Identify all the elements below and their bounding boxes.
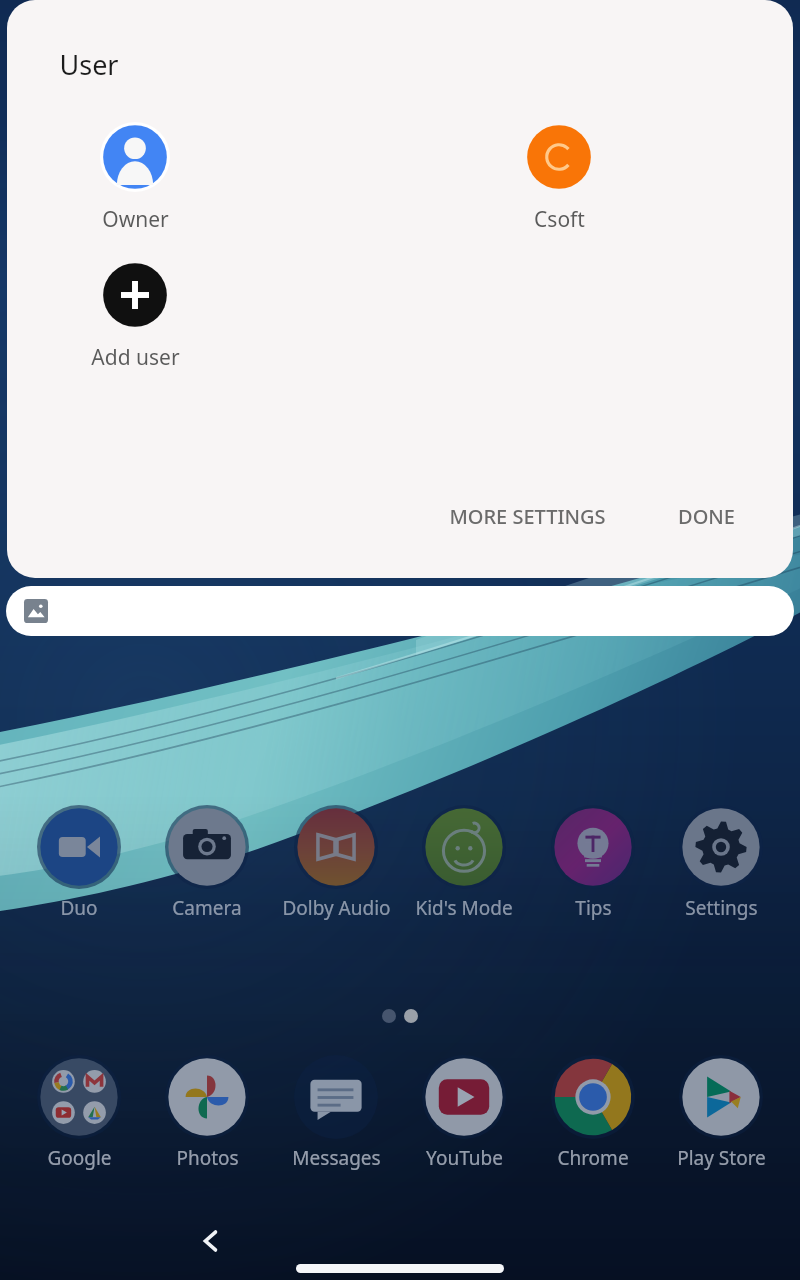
staticText: Photos: [176, 1145, 239, 1171]
button[interactable]: Back: [180, 1210, 242, 1272]
button[interactable]: Play Store: [661, 1055, 781, 1171]
staticText: DONE: [678, 503, 735, 530]
staticText: Add user: [91, 343, 180, 372]
button[interactable]: Home: [295, 1255, 505, 1280]
button[interactable]: Settings: [661, 805, 781, 921]
button[interactable]: Messages: [276, 1055, 396, 1171]
button[interactable]: YouTube: [404, 1055, 524, 1171]
staticText: Duo: [60, 895, 98, 921]
staticText: Camera: [172, 895, 242, 921]
button[interactable]: Dolby Audio: [276, 805, 396, 921]
button[interactable]: Photos: [147, 1055, 267, 1171]
staticText: YouTube: [426, 1145, 503, 1171]
staticText: User: [59, 46, 119, 83]
button[interactable]: Duo: [19, 805, 139, 921]
staticText: Settings: [685, 895, 758, 921]
button[interactable]: Chrome: [533, 1055, 653, 1171]
button[interactable]: Camera: [147, 805, 267, 921]
staticText: Kid's Mode: [415, 895, 513, 921]
button[interactable]: MORE SETTINGS: [435, 491, 620, 542]
button[interactable]: DONE: [664, 491, 749, 542]
staticText: Google: [47, 1145, 112, 1171]
staticText: Dolby Audio: [282, 895, 391, 921]
staticText: Owner: [102, 205, 169, 234]
staticText: Csoft: [534, 205, 585, 234]
staticText: Play Store: [677, 1145, 766, 1171]
staticText: Chrome: [557, 1145, 629, 1171]
button[interactable]: Kid's Mode: [404, 805, 524, 921]
button[interactable]: Google: [19, 1055, 139, 1171]
button[interactable]: Csoft: [479, 122, 639, 234]
other: Image: [24, 599, 48, 623]
button[interactable]: Add user: [55, 260, 215, 372]
staticText: MORE SETTINGS: [449, 503, 606, 530]
staticText: Tips: [575, 895, 612, 921]
staticText: Messages: [292, 1145, 381, 1171]
button[interactable]: Tips: [533, 805, 653, 921]
button[interactable]: Owner: [55, 122, 215, 234]
button[interactable]: Image: [6, 586, 794, 636]
